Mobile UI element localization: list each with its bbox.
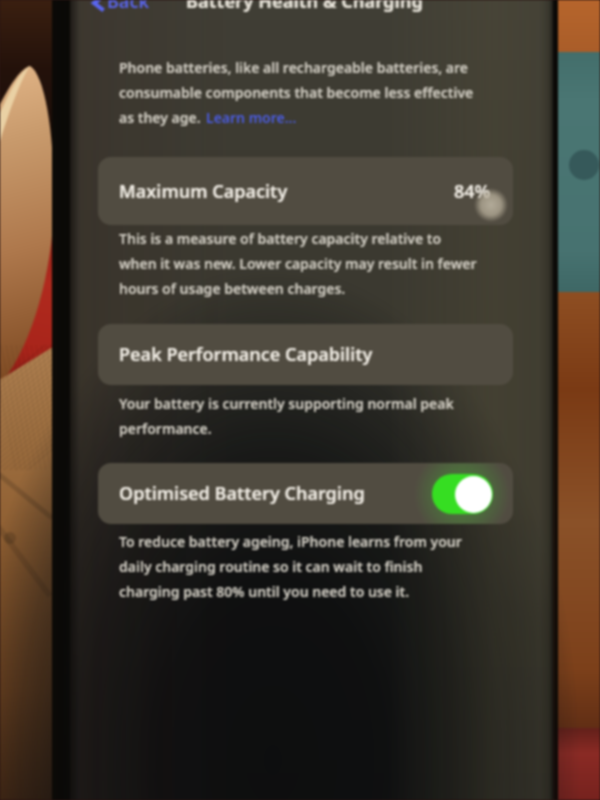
staticText: Back <box>107 0 150 14</box>
staticText: Your battery is currently supporting nor… <box>119 394 454 438</box>
button[interactable]: Back <box>90 0 150 14</box>
staticText: Peak Performance Capability <box>119 342 373 367</box>
staticText: Maximum Capacity <box>119 179 288 204</box>
staticText: 84% <box>454 179 491 204</box>
staticText: This is a measure of battery capacity re… <box>119 229 477 298</box>
button[interactable]: Learn more... <box>206 108 297 127</box>
staticText: Optimised Battery Charging <box>119 481 365 506</box>
staticText: To reduce battery ageing, iPhone learns … <box>119 532 462 601</box>
button[interactable]: Peak Performance Capability <box>98 324 513 385</box>
staticText: Battery Health & Charging <box>186 0 423 14</box>
staticText: Phone batteries, like all rechargeable b… <box>119 58 474 127</box>
button[interactable]: Maximum Capacity <box>98 157 513 225</box>
button[interactable]: Optimised Battery Charging toggle, on <box>432 474 493 514</box>
button[interactable]: Optimised Battery Charging <box>98 463 513 524</box>
